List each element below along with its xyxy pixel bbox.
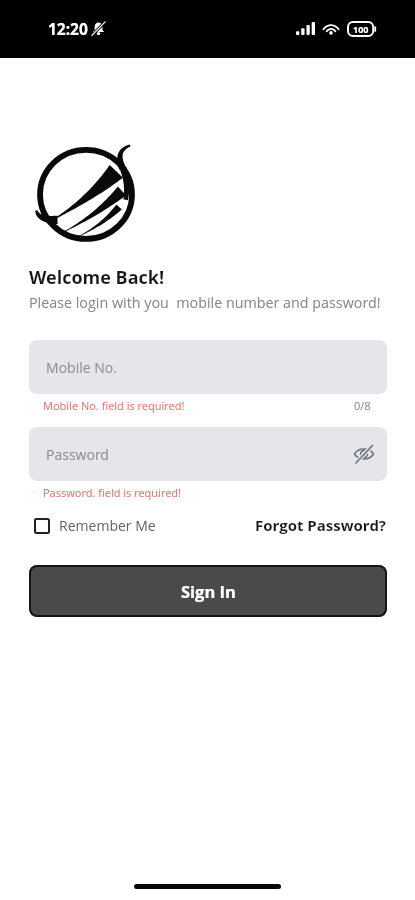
button[interactable]: Forgot Password? (255, 512, 387, 538)
button[interactable]: Remember Me (29, 513, 161, 538)
staticText: Password. field is required! (43, 485, 182, 500)
button[interactable]: Password (29, 427, 387, 481)
button[interactable]: Show password (349, 439, 379, 469)
staticText: 0/8 (354, 398, 371, 413)
staticText: 100 (353, 23, 369, 35)
button[interactable]: Mobile No. (29, 340, 387, 394)
staticText: Welcome Back! (29, 265, 165, 290)
staticText: Remember Me (59, 516, 156, 535)
staticText: Forgot Password? (255, 515, 387, 535)
staticText: Password (46, 445, 109, 464)
staticText: Please login with you mobile number and … (29, 293, 381, 312)
staticText: Sign In (181, 580, 236, 602)
staticText: 12:20 (48, 18, 88, 39)
staticText: Mobile No. field is required! (43, 398, 185, 413)
button[interactable]: Sign In (29, 565, 387, 617)
staticText: Mobile No. (46, 358, 117, 377)
